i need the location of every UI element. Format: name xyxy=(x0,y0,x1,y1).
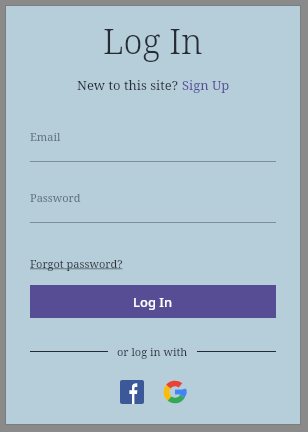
staticText: Password xyxy=(30,190,81,205)
staticText: New to this site? xyxy=(77,76,182,94)
button[interactable]: Sign Up xyxy=(182,76,230,94)
button[interactable]: Forgot password? xyxy=(30,256,276,271)
staticText: or log in with xyxy=(117,344,188,359)
staticText: Sign Up xyxy=(182,76,230,94)
staticText: Forgot password? xyxy=(30,256,123,271)
staticText: Log In xyxy=(133,293,173,311)
button[interactable]: Log In xyxy=(30,285,276,318)
button[interactable]: Log in with Facebook xyxy=(120,380,144,404)
staticText: Log In xyxy=(103,18,203,64)
staticText: Email xyxy=(30,129,61,144)
button[interactable]: Log in with Google xyxy=(163,380,187,404)
